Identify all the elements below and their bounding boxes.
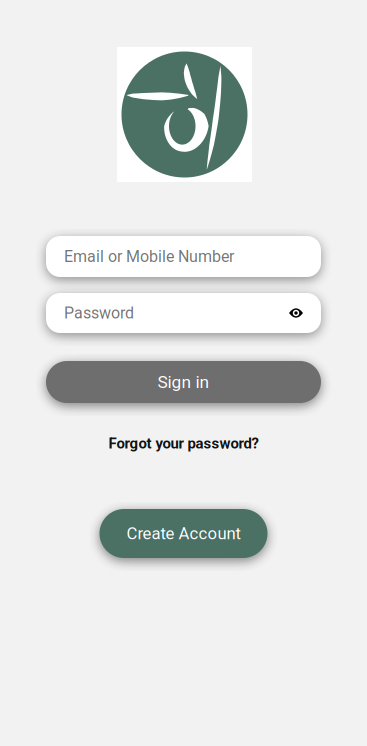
staticText: Create Account	[126, 524, 240, 543]
button[interactable]: Forgot your password?	[100, 431, 266, 456]
staticText: Forgot your password?	[108, 435, 258, 452]
button[interactable]: Create Account	[99, 509, 267, 558]
button[interactable]: Show password	[289, 302, 303, 324]
staticText: Email or Mobile Number	[64, 247, 234, 266]
button[interactable]: Sign in	[46, 361, 321, 403]
staticText: Password	[64, 304, 134, 322]
staticText: Sign in	[157, 372, 209, 392]
